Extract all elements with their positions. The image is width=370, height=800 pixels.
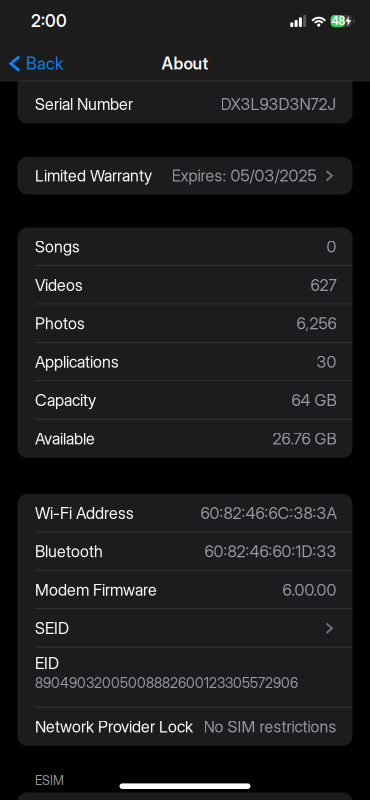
staticText: Serial Number (35, 95, 133, 114)
staticText: 0 (326, 237, 336, 256)
button[interactable]: Wi-Fi Address (17, 494, 352, 532)
staticText: EID (35, 653, 59, 673)
staticText: DX3L93D3N72J (220, 95, 336, 114)
staticText: 6.00.00 (282, 580, 336, 600)
button[interactable]: Applications (17, 343, 352, 381)
staticText: ESIM (35, 773, 64, 788)
staticText: About (161, 53, 208, 74)
staticText: Bluetooth (35, 542, 103, 561)
staticText: Capacity (35, 391, 96, 410)
staticText: 26.76 GB (272, 429, 336, 448)
staticText: Wi-Fi Address (35, 503, 134, 523)
staticText: 2:00 (31, 11, 67, 31)
staticText: Modem Firmware (35, 580, 157, 600)
staticText: Photos (35, 314, 85, 333)
staticText: 64 GB (291, 391, 336, 410)
button[interactable]: Videos (17, 266, 352, 304)
button[interactable]: SEID (17, 609, 352, 647)
staticText: 60:82:46:6C:38:3A (200, 503, 336, 523)
staticText: 89049032005008882600123305572906 (35, 674, 298, 691)
button[interactable]: Songs (17, 227, 352, 266)
button[interactable]: Network Provider Lock (17, 707, 352, 746)
button[interactable]: Bluetooth (17, 532, 352, 571)
staticText: Limited Warranty (35, 166, 152, 185)
staticText: Applications (35, 352, 119, 372)
button[interactable]: Capacity (17, 381, 352, 419)
staticText: Network Provider Lock (35, 717, 193, 736)
button[interactable]: Photos (17, 304, 352, 343)
staticText: Available (35, 429, 95, 448)
staticText: 60:82:46:60:1D:33 (204, 542, 336, 561)
staticText: 6,256 (296, 314, 336, 333)
staticText: 48 (331, 14, 345, 28)
button[interactable]: Serial Number (17, 71, 352, 123)
button[interactable]: Back (0, 53, 63, 74)
staticText: Videos (35, 275, 83, 295)
staticText: No SIM restrictions (203, 717, 336, 736)
staticText: SEID (35, 619, 69, 638)
button[interactable]: Limited Warranty (17, 157, 352, 194)
button[interactable]: Modem Firmware (17, 571, 352, 609)
staticText: Songs (35, 237, 80, 256)
button[interactable]: Available (17, 419, 352, 458)
staticText: 30 (316, 352, 336, 372)
staticText: Expires: 05/03/2025 (171, 166, 316, 185)
staticText: Back (26, 53, 63, 74)
button[interactable]: EID (17, 647, 352, 707)
staticText: 627 (310, 275, 336, 295)
